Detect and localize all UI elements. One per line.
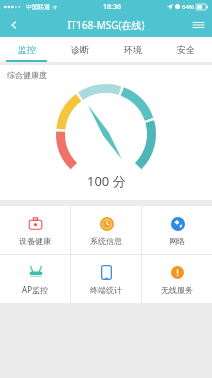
staticText: 设备健康 xyxy=(19,236,51,246)
staticText: 无线服务 xyxy=(161,285,193,295)
staticText: 监控 xyxy=(18,44,36,55)
staticText: 系统信息 xyxy=(90,236,122,246)
button[interactable]: 环境 xyxy=(106,37,159,62)
staticText: 综合健康度 xyxy=(7,70,47,80)
button[interactable]: 监控 xyxy=(0,37,53,62)
button[interactable]: 设备健康 xyxy=(0,206,70,254)
staticText: 终端统计 xyxy=(90,285,122,295)
staticText: IT168-MSG(在线) xyxy=(67,18,145,32)
button[interactable]: Menu xyxy=(188,15,208,35)
staticText: 环境 xyxy=(124,44,142,55)
staticText: 18:36 xyxy=(103,2,121,12)
staticText: 诊断 xyxy=(71,44,89,55)
staticText: 中国联通 xyxy=(26,3,50,11)
staticText: 网络 xyxy=(169,236,185,246)
staticText: 100 分 xyxy=(87,172,126,190)
button[interactable]: AP监控 xyxy=(0,255,70,303)
button[interactable]: 终端统计 xyxy=(71,255,141,303)
button[interactable]: 无线服务 xyxy=(142,255,212,303)
button[interactable]: 系统信息 xyxy=(71,206,141,254)
button[interactable]: Back xyxy=(4,15,24,35)
staticText: AP监控 xyxy=(22,284,48,295)
staticText: 安全 xyxy=(177,44,195,55)
button[interactable]: 安全 xyxy=(159,37,212,62)
button[interactable]: 诊断 xyxy=(53,37,106,62)
staticText: 64% xyxy=(182,3,194,11)
button[interactable]: 网络 xyxy=(142,206,212,254)
